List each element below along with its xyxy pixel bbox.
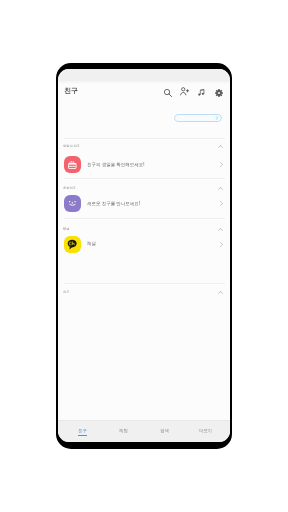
staticText: 채널 xyxy=(63,227,70,231)
button[interactable]: 검색 xyxy=(144,421,185,442)
staticText: 친구 xyxy=(64,86,78,95)
button[interactable]: 더보기 xyxy=(185,421,226,442)
button[interactable]: Search xyxy=(160,85,175,100)
staticText: 친구의 생일을 확인해보세요! xyxy=(87,161,145,167)
staticText: 친구 xyxy=(78,428,87,434)
button[interactable]: 채널 xyxy=(58,233,230,255)
staticText: 검색 xyxy=(160,428,169,434)
button[interactable]: 친구 xyxy=(58,286,230,298)
button[interactable]: 채널 xyxy=(58,223,230,235)
button[interactable]: 친구 xyxy=(61,421,103,442)
staticText: 채팅 xyxy=(119,428,128,434)
button[interactable]: 생일인 친구 xyxy=(58,140,230,152)
button[interactable]: 친구의 생일을 확인해보세요! xyxy=(58,153,230,175)
button[interactable]: Add friend xyxy=(177,84,192,99)
staticText: 생일인 친구 xyxy=(63,144,80,148)
button[interactable]: 채팅 xyxy=(103,421,144,442)
button[interactable] xyxy=(174,114,222,122)
button[interactable]: Settings xyxy=(211,85,226,100)
staticText: 추천친구 xyxy=(63,186,76,190)
button[interactable]: 새로운 친구를 만나보세요! xyxy=(58,192,230,214)
button[interactable]: 추천친구 xyxy=(58,182,230,194)
staticText: 더보기 xyxy=(199,428,213,434)
staticText: 친구 xyxy=(63,290,70,294)
staticText: 새로운 친구를 만나보세요! xyxy=(87,200,141,206)
button[interactable]: Music xyxy=(194,85,209,100)
staticText: 채널 xyxy=(87,241,96,247)
